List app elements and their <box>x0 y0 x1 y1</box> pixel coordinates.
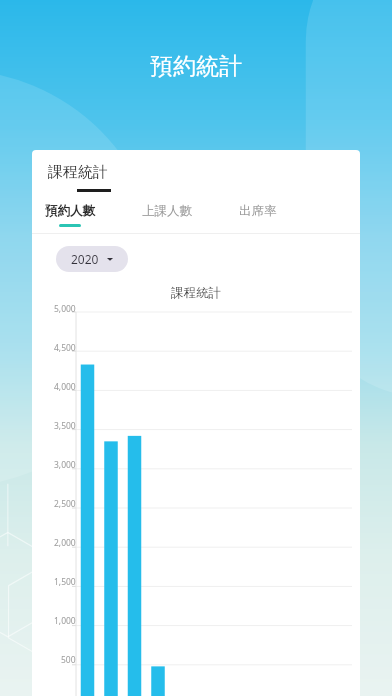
staticText: 2020 <box>71 251 99 267</box>
staticText: 預約統計 <box>150 52 242 81</box>
button[interactable]: 上課人數 <box>129 203 205 233</box>
staticText: 課程統計 <box>171 285 221 301</box>
staticText: 3,000 <box>54 459 76 471</box>
button[interactable]: 出席率 <box>227 203 289 233</box>
staticText: 1,500 <box>54 576 76 588</box>
staticText: 500 <box>61 654 76 666</box>
staticText: 2,000 <box>54 537 76 549</box>
staticText: 3,500 <box>54 420 76 432</box>
staticText: 出席率 <box>239 203 277 219</box>
staticText: 1,000 <box>54 615 76 627</box>
staticText: 預約人數 <box>45 203 95 219</box>
button[interactable]: Year 2020 selector <box>56 246 128 272</box>
staticText: 4,500 <box>54 342 76 354</box>
staticText: 4,000 <box>54 381 76 393</box>
staticText: 2,500 <box>54 498 76 510</box>
staticText: 5,000 <box>54 303 76 315</box>
staticText: 上課人數 <box>142 203 192 219</box>
button[interactable]: 預約人數 <box>32 203 108 233</box>
staticText: 課程統計 <box>48 163 108 182</box>
